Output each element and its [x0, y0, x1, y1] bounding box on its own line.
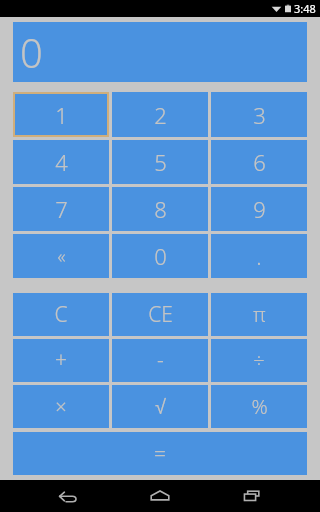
button[interactable]: 2 — [112, 92, 208, 137]
button[interactable]: CE — [112, 293, 208, 336]
staticText: 4 — [55, 147, 68, 177]
button[interactable]: 4 — [13, 140, 109, 184]
staticText: 8 — [154, 194, 167, 224]
button[interactable]: Home — [136, 480, 184, 512]
button[interactable]: . — [211, 234, 307, 278]
button[interactable]: - — [112, 339, 208, 382]
button[interactable]: × — [13, 385, 109, 428]
button[interactable]: 8 — [112, 187, 208, 231]
staticText: 5 — [154, 147, 167, 177]
staticText: - — [157, 346, 164, 375]
button[interactable]: 6 — [211, 140, 307, 184]
staticText: π — [253, 301, 266, 328]
button[interactable]: « — [13, 234, 109, 278]
staticText: 1 — [55, 100, 68, 130]
staticText: 3:48 — [294, 1, 316, 16]
staticText: + — [55, 346, 67, 375]
staticText: 0 — [20, 25, 43, 79]
button[interactable]: 0 — [112, 234, 208, 278]
staticText: ÷ — [253, 347, 265, 374]
button[interactable]: Recent apps — [228, 480, 276, 512]
staticText: × — [55, 393, 67, 420]
staticText: √ — [155, 396, 166, 418]
staticText: 7 — [55, 194, 68, 224]
button[interactable]: √ — [112, 385, 208, 428]
staticText: 2 — [154, 100, 167, 130]
button[interactable]: 9 — [211, 187, 307, 231]
button[interactable]: Back — [44, 480, 92, 512]
button[interactable]: ÷ — [211, 339, 307, 382]
staticText: 9 — [253, 194, 266, 224]
button[interactable]: C — [13, 293, 109, 336]
staticText: C — [54, 300, 68, 329]
staticText: = — [154, 439, 166, 468]
staticText: CE — [148, 300, 173, 329]
button[interactable]: = — [13, 432, 307, 475]
staticText: 6 — [253, 147, 266, 177]
button[interactable]: 0 — [13, 22, 307, 82]
staticText: . — [256, 241, 262, 271]
staticText: 0 — [154, 241, 167, 271]
button[interactable]: + — [13, 339, 109, 382]
staticText: % — [251, 393, 268, 420]
button[interactable]: 1 — [15, 94, 107, 135]
staticText: 3 — [253, 100, 266, 130]
button[interactable]: % — [211, 385, 307, 428]
button[interactable]: 3 — [211, 92, 307, 137]
button[interactable]: π — [211, 293, 307, 336]
button[interactable]: 7 — [13, 187, 109, 231]
staticText: « — [57, 244, 66, 269]
button[interactable]: 5 — [112, 140, 208, 184]
